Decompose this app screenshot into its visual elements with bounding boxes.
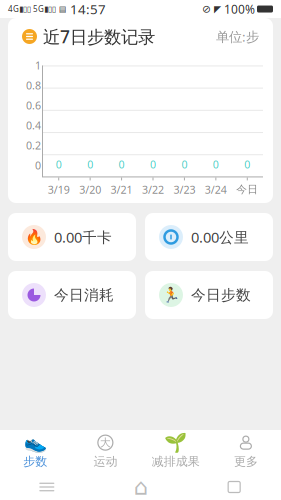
staticText: 3/22	[142, 182, 164, 197]
staticText: 运动	[93, 454, 117, 469]
staticText: ⌂	[133, 474, 147, 500]
button[interactable]: Menu	[0, 474, 94, 500]
button[interactable]: 更多	[211, 429, 281, 474]
staticText: 3/19	[48, 182, 70, 197]
staticText: 单位:步	[216, 28, 259, 45]
button[interactable]: Recent apps	[187, 474, 281, 500]
button[interactable]: 🔥	[8, 213, 136, 261]
staticText: 3/21	[111, 182, 133, 197]
staticText: 0	[244, 157, 250, 171]
staticText: 0.8	[26, 78, 41, 92]
staticText: ▮▯▯	[19, 4, 31, 14]
staticText: 0	[35, 158, 41, 172]
staticText: 近7日步数记录	[43, 25, 155, 48]
staticText: 减排成果	[152, 454, 200, 469]
staticText: 0.6	[26, 98, 41, 112]
staticText: 3/23	[173, 182, 195, 197]
staticText: 今日消耗	[54, 286, 114, 304]
staticText: 0.2	[26, 138, 41, 152]
staticText: 🔥	[25, 229, 43, 245]
button[interactable]: 今日消耗	[8, 271, 136, 319]
staticText: 0	[181, 157, 187, 171]
staticText: 更多	[234, 454, 258, 469]
staticText: 4G	[8, 4, 19, 14]
staticText: ◤	[211, 4, 224, 14]
staticText: ⊘	[202, 3, 211, 15]
staticText: 0	[56, 157, 62, 171]
button[interactable]: Home	[94, 474, 187, 500]
staticText: 0.00公里	[191, 227, 249, 247]
staticText: 🏃	[162, 287, 180, 303]
staticText: 3/20	[79, 182, 101, 197]
staticText: 大	[100, 436, 111, 449]
staticText: 0	[150, 157, 156, 171]
staticText: ▮▯▯ ▤	[44, 4, 67, 14]
staticText: 👟	[24, 432, 47, 453]
staticText: 0.00千卡	[54, 227, 112, 247]
button[interactable]: 大	[70, 429, 140, 474]
staticText: 0	[213, 157, 219, 171]
staticText: 1	[35, 58, 41, 72]
staticText: 🌱	[164, 432, 187, 453]
staticText: 0.4	[26, 118, 41, 132]
staticText: 今日步数	[191, 286, 251, 304]
staticText: 步数	[23, 454, 47, 469]
staticText: 14:57	[67, 0, 106, 18]
button[interactable]: 🌱	[140, 429, 211, 474]
button[interactable]: 0.00公里	[145, 213, 273, 261]
staticText: 0	[119, 157, 125, 171]
staticText: 100%	[224, 1, 255, 17]
button[interactable]: 👟	[0, 429, 70, 474]
staticText: 5G	[31, 4, 44, 14]
staticText: 0	[87, 157, 93, 171]
staticText: 3/24	[205, 182, 227, 197]
staticText: 今日	[236, 183, 258, 196]
button[interactable]: 🏃	[145, 271, 273, 319]
